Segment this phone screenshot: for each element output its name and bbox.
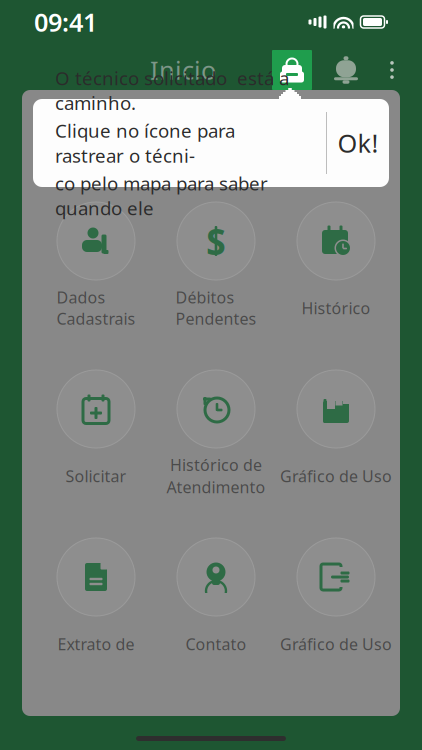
button[interactable]: Contato xyxy=(160,538,272,659)
button[interactable]: Histórico de xyxy=(160,370,272,491)
button[interactable]: Notificações xyxy=(328,50,364,90)
staticText: Solicitar xyxy=(65,465,126,487)
button[interactable]: Dados Cadastrais xyxy=(40,202,152,323)
staticText: Extrato de xyxy=(57,633,134,655)
button[interactable]: Extrato de xyxy=(40,538,152,659)
button[interactable]: S xyxy=(160,202,272,323)
staticText: Histórico xyxy=(301,297,370,319)
staticText: Ok! xyxy=(337,126,378,160)
staticText: 09:41 xyxy=(34,5,97,39)
staticText: Débitos Pendentes xyxy=(175,287,256,329)
staticText: Contato xyxy=(185,633,246,655)
staticText: Clique no ícone para rastrear o técni- xyxy=(55,118,235,168)
button[interactable]: Solicitar xyxy=(40,370,152,491)
button[interactable]: Gráfico de Uso xyxy=(280,370,392,491)
button[interactable]: Gráfico de Uso xyxy=(280,538,392,659)
staticText: Gráfico de Uso xyxy=(280,633,392,655)
staticText: Dados Cadastrais xyxy=(56,287,135,329)
button[interactable]: Ok! xyxy=(327,99,389,187)
staticText: Inicio xyxy=(150,53,216,87)
staticText: co pelo mapa para saber quando ele xyxy=(55,171,268,220)
button[interactable]: Rastrear técnico xyxy=(272,50,312,90)
button[interactable]: Mais opções xyxy=(378,50,406,90)
staticText: Gráfico de Uso xyxy=(280,465,392,487)
staticText: Atendimento xyxy=(166,476,265,498)
staticText: Histórico de xyxy=(170,454,262,475)
staticText: S xyxy=(206,217,226,265)
staticText: O técnico solicitado está a caminho. xyxy=(55,66,289,115)
button[interactable]: Histórico xyxy=(280,202,392,323)
